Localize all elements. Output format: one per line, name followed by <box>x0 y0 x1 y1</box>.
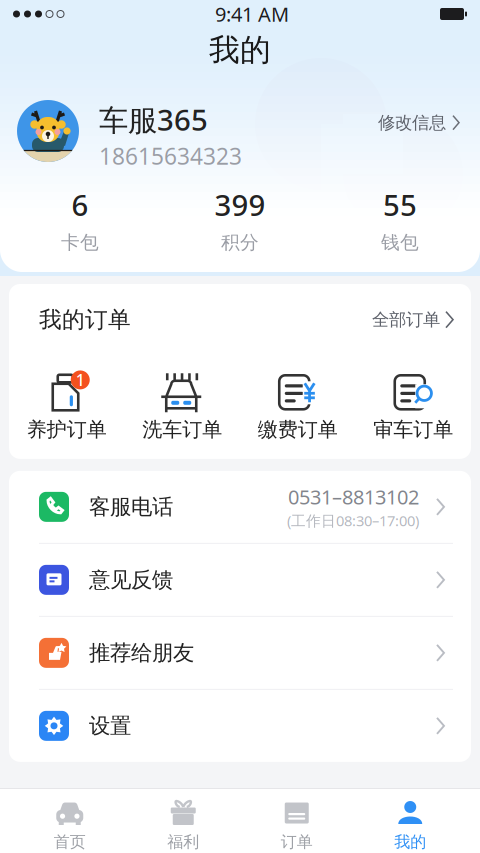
button[interactable]: 客服电话 <box>9 471 471 543</box>
button[interactable]: 设置 <box>9 690 471 762</box>
staticText: 399 <box>214 185 265 224</box>
staticText: 缴费订单 <box>258 417 338 442</box>
staticText: 推荐给朋友 <box>89 640 194 666</box>
staticText: 福利 <box>167 832 199 852</box>
staticText: (工作日08:30–17:00) <box>287 511 419 530</box>
staticText: 18615634323 <box>99 141 242 171</box>
button[interactable]: 订单 <box>240 789 353 853</box>
staticText: 钱包 <box>381 231 419 254</box>
button[interactable]: 缴费订单 <box>240 369 355 442</box>
button[interactable]: 全部订单 <box>372 303 454 336</box>
staticText: 卡包 <box>61 231 99 254</box>
button[interactable]: 修改信息 <box>378 100 460 139</box>
staticText: 我的 <box>394 832 426 852</box>
staticText: 修改信息 <box>378 112 446 133</box>
staticText: 积分 <box>221 231 259 254</box>
staticText: 车服365 <box>99 100 208 139</box>
button[interactable]: 首页 <box>13 789 126 853</box>
staticText: 我的 <box>209 31 271 69</box>
staticText: 审车订单 <box>373 417 453 442</box>
staticText: 养护订单 <box>27 417 107 442</box>
staticText: 6 <box>71 185 88 224</box>
staticText: 0531–8813102 <box>288 483 419 510</box>
staticText: 意见反馈 <box>89 567 173 593</box>
staticText: 1 <box>76 369 85 390</box>
staticText: 客服电话 <box>89 494 173 520</box>
staticText: 首页 <box>54 832 86 852</box>
button[interactable]: 福利 <box>126 789 240 853</box>
button[interactable]: 审车订单 <box>355 369 471 442</box>
button[interactable]: 洗车订单 <box>124 369 240 442</box>
staticText: 设置 <box>89 713 131 739</box>
staticText: 全部订单 <box>372 309 440 330</box>
staticText: 订单 <box>281 832 313 852</box>
staticText: 我的订单 <box>39 306 131 333</box>
staticText: 洗车订单 <box>142 417 222 442</box>
button[interactable]: 我的 <box>353 789 467 853</box>
staticText: 55 <box>383 185 417 224</box>
button[interactable]: 1 <box>9 369 124 442</box>
button[interactable]: 推荐给朋友 <box>9 617 471 689</box>
staticText: 9:41 AM <box>215 1 289 27</box>
button[interactable]: 意见反馈 <box>9 544 471 616</box>
